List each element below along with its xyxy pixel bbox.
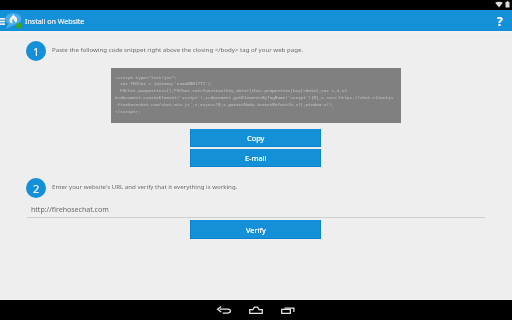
button[interactable]: Help <box>492 10 512 31</box>
button[interactable]: Back <box>214 300 234 320</box>
staticText: Verify <box>246 225 266 235</box>
staticText: 2 <box>33 181 40 196</box>
staticText: <script type="text/jav"> var FHChat = {q… <box>115 74 394 115</box>
staticText: 1 <box>33 44 40 59</box>
staticText: Install on Website <box>25 16 85 26</box>
staticText: E-mail <box>245 153 267 163</box>
button[interactable]: Copy <box>190 129 321 147</box>
button[interactable]: Recents <box>278 300 298 320</box>
button[interactable]: http://firehosechat.com <box>27 205 485 218</box>
staticText: ? <box>497 13 503 29</box>
button[interactable]: Menu <box>0 10 10 31</box>
staticText: Enter your website's URL and verify that… <box>52 182 238 190</box>
staticText: Copy <box>247 133 265 143</box>
button[interactable]: Verify <box>190 220 321 239</box>
staticText: Paste the following code snippet right a… <box>52 45 304 53</box>
button[interactable]: Home <box>246 300 266 320</box>
staticText: http://firehosechat.com <box>31 205 109 215</box>
button[interactable]: E-mail <box>190 149 321 167</box>
